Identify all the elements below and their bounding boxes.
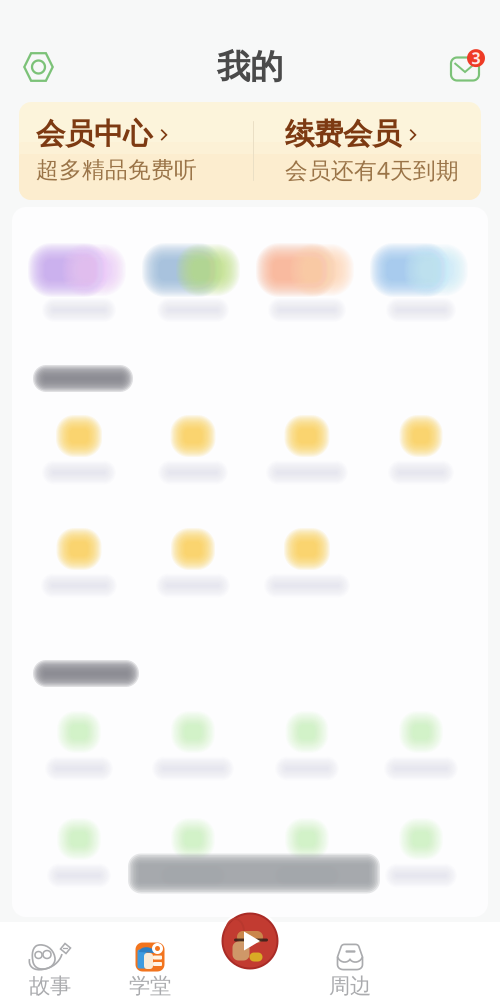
button[interactable] [364, 815, 478, 888]
staticText: 续费会员 [285, 116, 401, 152]
staticText: 会员中心 [36, 116, 152, 152]
button[interactable] [136, 412, 250, 485]
button[interactable] [250, 708, 364, 781]
button[interactable] [250, 815, 364, 888]
button[interactable]: 续费会员 [285, 121, 481, 181]
button[interactable]: Settings [23, 51, 54, 82]
button[interactable] [22, 525, 136, 598]
button[interactable] [250, 243, 364, 323]
button[interactable] [136, 525, 250, 598]
button[interactable] [136, 243, 250, 323]
button[interactable] [364, 243, 478, 323]
staticText: 故事 [29, 973, 71, 999]
button[interactable] [136, 815, 250, 888]
button[interactable]: 学堂 [100, 922, 200, 1000]
button[interactable]: 周边 [300, 922, 400, 1000]
button[interactable] [22, 412, 136, 485]
button[interactable]: 会员中心 [36, 121, 232, 181]
staticText: 超多精品免费听 [36, 156, 197, 184]
button[interactable] [364, 708, 478, 781]
staticText: 3 [471, 47, 480, 69]
button[interactable] [22, 243, 136, 323]
button[interactable] [22, 815, 136, 888]
button[interactable] [250, 525, 364, 598]
staticText: 周边 [329, 973, 371, 999]
button[interactable]: 故事 [0, 922, 100, 1000]
staticText: 会员还有4天到期 [285, 155, 459, 185]
staticText: 学堂 [129, 973, 171, 999]
button[interactable] [250, 412, 364, 485]
button[interactable]: Play [219, 910, 281, 972]
button[interactable]: Messages [451, 47, 485, 80]
button[interactable] [364, 412, 478, 485]
button[interactable] [136, 708, 250, 781]
button[interactable] [22, 708, 136, 781]
staticText: 我的 [217, 46, 283, 87]
